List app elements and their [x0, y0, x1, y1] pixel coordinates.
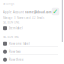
button[interactable]: Row two [0, 46, 64, 54]
staticText: Settings [3, 2, 14, 5]
staticText: Manage 3 Names and 42 Emails [3, 16, 44, 20]
staticText: Row two [9, 50, 21, 53]
staticText: ✓ [52, 8, 58, 15]
staticText: SECTION TWO [3, 35, 19, 39]
staticText: Item label [9, 26, 23, 30]
button[interactable]: Row one label [0, 39, 64, 46]
staticText: name@icloud.com [25, 10, 52, 14]
button[interactable]: Verified [52, 8, 59, 15]
button[interactable]: Row three [0, 54, 64, 62]
staticText: Apple Account [3, 10, 24, 14]
staticText: SECTION ONE [3, 21, 19, 24]
button[interactable]: Item label [0, 24, 64, 30]
staticText: Row one label [9, 42, 30, 45]
staticText: Row three [9, 58, 24, 61]
